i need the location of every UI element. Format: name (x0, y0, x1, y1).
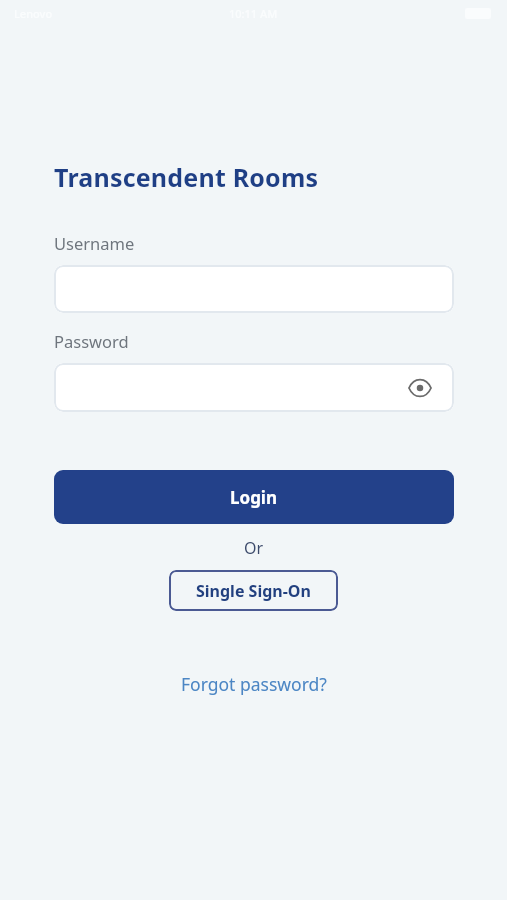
staticText: Transcendent Rooms (54, 160, 319, 194)
button[interactable]: Single Sign-On (169, 570, 338, 611)
staticText: Forgot password? (181, 672, 327, 696)
staticText: Password (54, 330, 129, 352)
button[interactable]: Login (54, 470, 454, 524)
button[interactable]: Show password (406, 374, 434, 402)
staticText: Single Sign-On (196, 580, 311, 602)
button[interactable] (54, 265, 454, 313)
button[interactable]: Forgot password? (181, 672, 327, 696)
staticText: Login (230, 486, 278, 509)
staticText: Username (54, 232, 135, 254)
button[interactable]: Show password (54, 363, 454, 412)
staticText: Or (0, 537, 507, 559)
